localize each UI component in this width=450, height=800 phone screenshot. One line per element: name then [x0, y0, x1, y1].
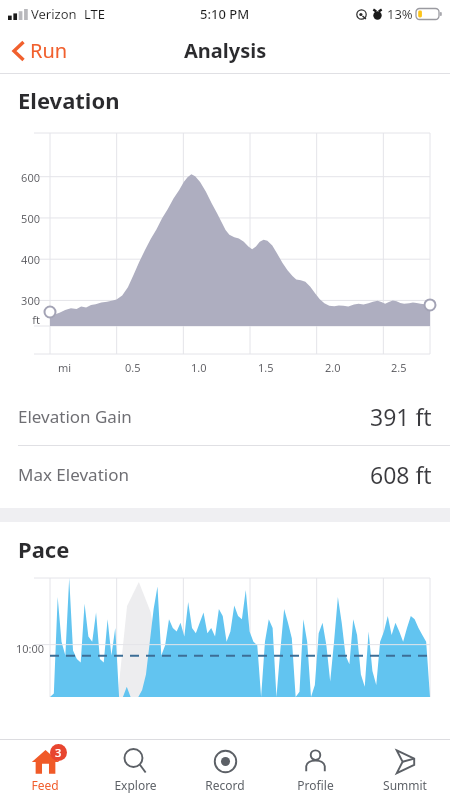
staticText: Profile	[297, 777, 334, 793]
staticText: Run	[30, 37, 68, 64]
staticText: 300	[0, 293, 40, 308]
staticText: 10:00	[0, 641, 44, 656]
staticText: 1.0	[191, 360, 207, 375]
staticText: Elevation	[18, 85, 120, 115]
staticText: 600	[0, 170, 40, 185]
staticText: 400	[0, 252, 40, 267]
staticText: LTE	[84, 5, 106, 23]
button[interactable]: Profile	[270, 740, 360, 800]
staticText: ft	[0, 312, 40, 327]
staticText: Max Elevation	[18, 463, 129, 486]
staticText: Verizon	[31, 5, 77, 23]
button[interactable]: Summit	[360, 740, 450, 800]
button[interactable]: Max Elevation	[0, 446, 450, 503]
staticText: Analysis	[184, 37, 267, 64]
staticText: 2.5	[391, 360, 407, 375]
staticText: 3	[55, 745, 62, 760]
staticText: 13%	[387, 5, 413, 23]
staticText: 391 ft	[370, 401, 432, 432]
button[interactable]: Elevation Gain	[0, 388, 450, 445]
staticText: mi	[58, 360, 72, 375]
button[interactable]: Feed	[0, 740, 90, 800]
button[interactable]: Record	[180, 740, 270, 800]
staticText: Pace	[18, 534, 70, 564]
staticText: 2.0	[325, 360, 341, 375]
staticText: Elevation Gain	[18, 405, 132, 428]
staticText: Record	[205, 777, 245, 793]
button[interactable]: Run	[0, 31, 82, 70]
staticText: Feed	[31, 777, 59, 793]
staticText: 500	[0, 211, 40, 226]
staticText: Summit	[383, 777, 427, 793]
staticText: 608 ft	[370, 459, 432, 490]
staticText: Explore	[114, 777, 157, 793]
button[interactable]: Explore	[90, 740, 180, 800]
staticText: 0.5	[125, 360, 141, 375]
staticText: 5:10 PM	[200, 5, 250, 23]
staticText: 1.5	[258, 360, 274, 375]
